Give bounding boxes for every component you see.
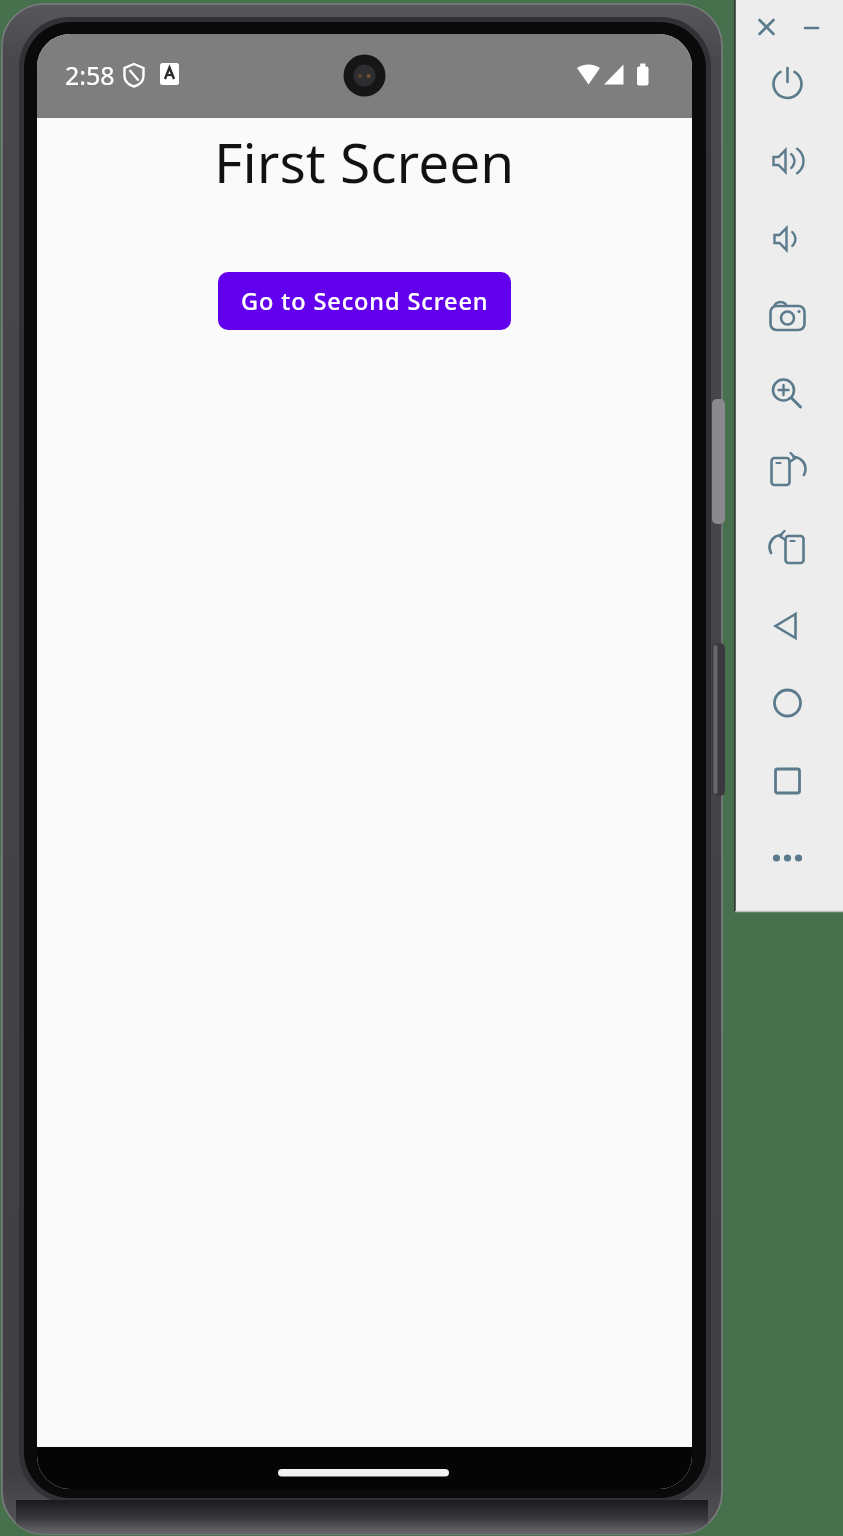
button[interactable] [766, 63, 808, 105]
button[interactable] [766, 450, 808, 492]
button[interactable] [766, 760, 808, 802]
button[interactable] [749, 10, 783, 44]
button[interactable] [766, 682, 808, 724]
button[interactable] [766, 605, 808, 647]
button[interactable] [766, 528, 808, 570]
button[interactable] [766, 218, 808, 260]
button[interactable] [766, 140, 808, 182]
button[interactable] [766, 373, 808, 415]
staticText: 2:58 [65, 58, 115, 92]
staticText: First Screen [214, 124, 515, 199]
button[interactable] [766, 837, 808, 879]
button[interactable]: Go to Second Screen [218, 272, 511, 330]
button[interactable] [766, 295, 808, 337]
staticText: Go to Second Screen [241, 285, 489, 317]
button[interactable] [795, 10, 829, 44]
